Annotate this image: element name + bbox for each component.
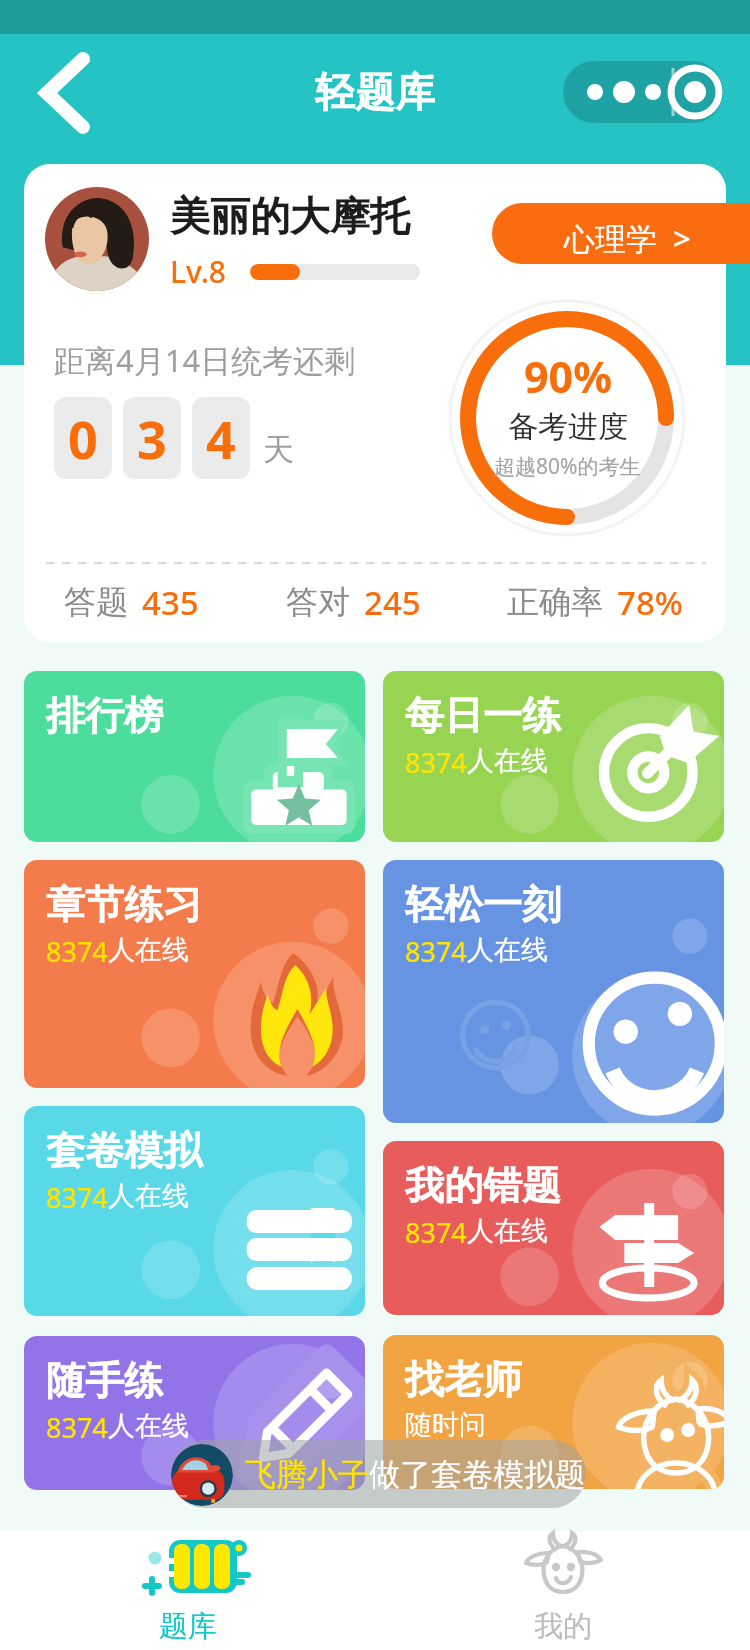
staticText: 8374 [46, 1409, 108, 1446]
button[interactable]: 我的 [375, 1531, 750, 1650]
staticText: 答题 [64, 582, 128, 622]
staticText: 人在线 [108, 933, 189, 967]
staticText: 我的错题 [405, 1161, 561, 1210]
button[interactable]: 随手练 [24, 1336, 365, 1490]
button[interactable]: 我的错题 [383, 1141, 724, 1315]
button[interactable]: 答题 [64, 562, 199, 642]
staticText: 78% [617, 580, 683, 625]
staticText: 435 [142, 580, 199, 625]
staticText: 每日一练 [405, 691, 561, 740]
staticText: 8374 [405, 933, 467, 970]
staticText: 人在线 [108, 1179, 189, 1213]
button[interactable]: 题库 [0, 1531, 375, 1650]
staticText: 随手练 [46, 1356, 163, 1405]
button[interactable]: 套卷模拟 [24, 1106, 365, 1316]
staticText: 套卷模拟 [46, 1126, 202, 1175]
staticText: 轻松一刻 [405, 880, 561, 929]
staticText: 天 [263, 430, 294, 469]
button[interactable]: More options [563, 61, 723, 123]
staticText: 备考进度 [508, 408, 628, 446]
staticText: 题库 [159, 1608, 217, 1645]
staticText: Lv.8 [170, 251, 226, 292]
staticText: 人在线 [467, 744, 548, 778]
button[interactable]: 正确率 [507, 562, 683, 642]
staticText: 随时问 [405, 1408, 486, 1442]
staticText: 8374 [405, 744, 467, 781]
button[interactable]: 每日一练 [383, 671, 724, 842]
staticText: 美丽的大摩托 [170, 191, 410, 241]
button[interactable]: 轻松一刻 [383, 860, 724, 1123]
staticText: 8374 [46, 1179, 108, 1216]
staticText: 章节练习 [46, 880, 202, 929]
staticText: 我的 [534, 1608, 592, 1645]
button[interactable]: Back [14, 42, 114, 142]
button[interactable]: 心理学 > [492, 203, 750, 264]
staticText: 排行榜 [46, 691, 163, 740]
staticText: 轻题库 [315, 67, 435, 117]
staticText: 人在线 [467, 1214, 548, 1248]
staticText: 超越80%的考生 [494, 452, 641, 481]
staticText: 答对 [286, 582, 350, 622]
staticText: 3 [137, 403, 167, 474]
staticText: 找老师 [405, 1355, 522, 1404]
button[interactable]: 排行榜 [24, 671, 365, 842]
staticText: 心理学 > [564, 217, 691, 259]
button[interactable]: 答对 [286, 562, 421, 642]
button[interactable]: 章节练习 [24, 860, 365, 1088]
staticText: 245 [364, 580, 421, 625]
staticText: 正确率 [507, 582, 603, 622]
staticText: 4 [206, 403, 236, 474]
staticText: 0 [68, 403, 98, 474]
staticText: 8374 [46, 933, 108, 970]
button[interactable]: 找老师 [383, 1335, 724, 1489]
staticText: 飞腾小子做了套卷模拟题 [245, 1455, 586, 1494]
staticText: 8374 [405, 1214, 467, 1251]
staticText: 人在线 [108, 1409, 189, 1443]
staticText: 90% [524, 347, 612, 406]
staticText: 距离4月14日统考还剩 [54, 339, 356, 381]
staticText: 人在线 [467, 933, 548, 967]
